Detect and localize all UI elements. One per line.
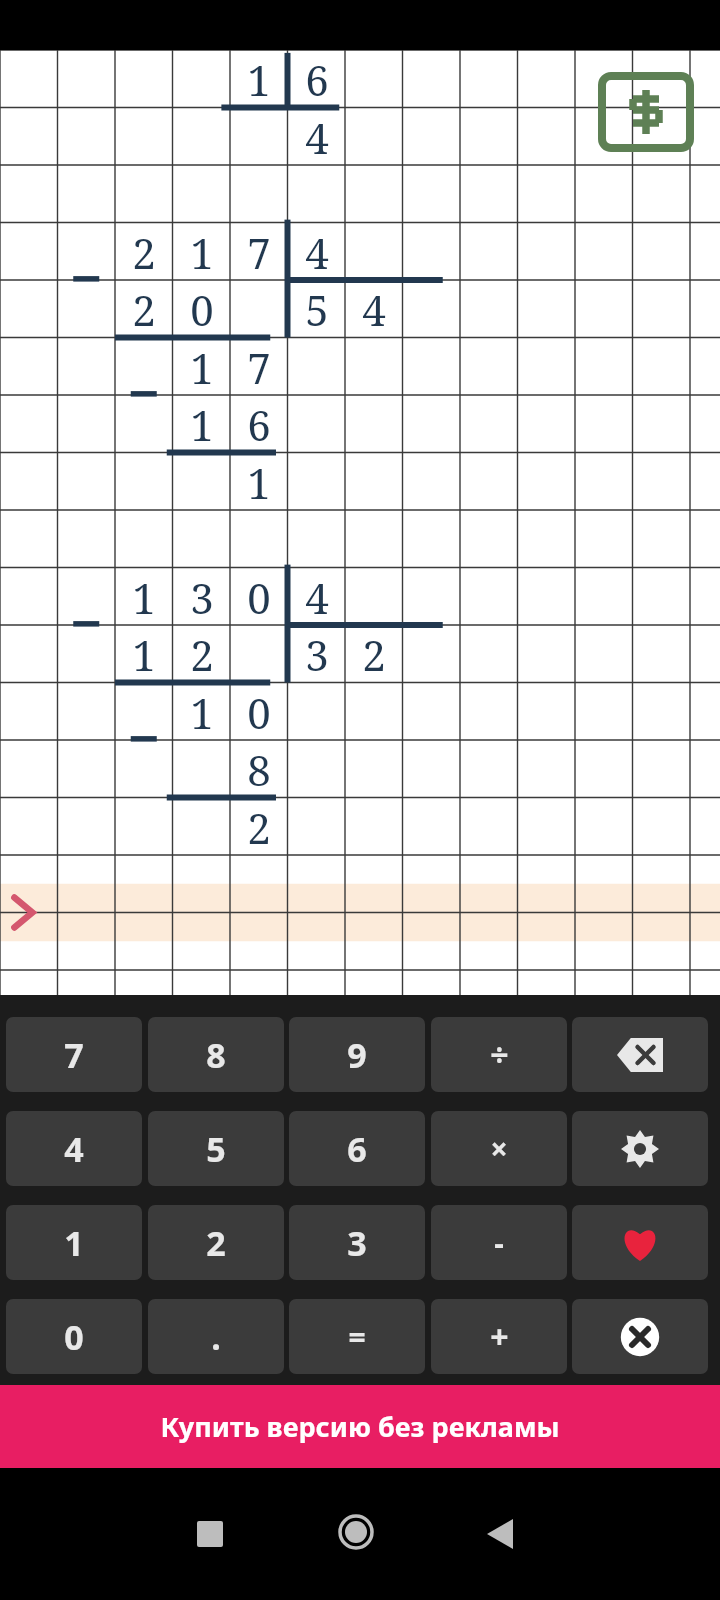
staticText: 4 xyxy=(362,281,386,338)
button[interactable]: Settings xyxy=(572,1111,708,1186)
button[interactable]: 6 xyxy=(289,1111,425,1186)
staticText: 2 xyxy=(247,799,271,856)
staticText: 7 xyxy=(247,224,271,281)
staticText: 1 xyxy=(247,454,271,511)
staticText: 2 xyxy=(362,626,386,683)
staticText: 4 xyxy=(305,109,329,166)
staticText: 0 xyxy=(190,281,214,338)
button[interactable]: Home xyxy=(325,1501,387,1563)
staticText: 0 xyxy=(247,684,271,741)
staticText: 9 xyxy=(347,1032,367,1078)
button[interactable]: 4 xyxy=(6,1111,142,1186)
staticText: 3 xyxy=(305,626,329,683)
staticText: 6 xyxy=(305,51,329,108)
button[interactable]: Back xyxy=(470,1504,530,1564)
staticText: 1 xyxy=(132,626,156,683)
staticText: × xyxy=(490,1128,508,1169)
button[interactable]: Backspace xyxy=(572,1017,708,1092)
staticText: 4 xyxy=(305,224,329,281)
button[interactable]: 9 xyxy=(289,1017,425,1092)
button[interactable]: 8 xyxy=(148,1017,284,1092)
staticText: 2 xyxy=(132,224,156,281)
button[interactable]: 5 xyxy=(148,1111,284,1186)
button[interactable]: = xyxy=(289,1299,425,1374)
staticText: 5 xyxy=(206,1126,226,1172)
button[interactable]: + xyxy=(431,1299,567,1374)
button[interactable]: 2 xyxy=(148,1205,284,1280)
staticText: = xyxy=(348,1316,366,1357)
button[interactable]: × xyxy=(431,1111,567,1186)
button[interactable]: Close xyxy=(572,1299,708,1374)
staticText: ÷ xyxy=(490,1033,509,1077)
staticText: 1 xyxy=(132,569,156,626)
button[interactable]: 3 xyxy=(289,1205,425,1280)
staticText: 6 xyxy=(347,1126,367,1172)
staticText: 8 xyxy=(247,741,271,798)
staticText: 1 xyxy=(190,224,214,281)
staticText: + xyxy=(490,1315,509,1359)
button[interactable]: 0 xyxy=(6,1299,142,1374)
staticText: 6 xyxy=(247,396,271,453)
staticText: 7 xyxy=(64,1032,84,1078)
staticText: 1 xyxy=(190,339,214,396)
button[interactable]: Buy ad-free version xyxy=(598,72,694,152)
staticText: 0 xyxy=(64,1314,84,1360)
button[interactable]: 7 xyxy=(6,1017,142,1092)
staticText: 1 xyxy=(190,396,214,453)
staticText: 2 xyxy=(132,281,156,338)
staticText: 5 xyxy=(305,281,329,338)
staticText: . xyxy=(211,1314,221,1360)
button[interactable]: Favorite xyxy=(572,1205,708,1280)
staticText: 1 xyxy=(64,1220,84,1266)
staticText: 0 xyxy=(247,569,271,626)
staticText: Купить версию без рекламы xyxy=(160,1408,560,1445)
button[interactable]: ÷ xyxy=(431,1017,567,1092)
button[interactable]: - xyxy=(431,1205,567,1280)
staticText: 3 xyxy=(347,1220,367,1266)
staticText: - xyxy=(494,1222,504,1263)
staticText: 4 xyxy=(64,1126,84,1172)
button[interactable]: 1 xyxy=(6,1205,142,1280)
staticText: 8 xyxy=(206,1032,226,1078)
staticText: 3 xyxy=(190,569,214,626)
staticText: 1 xyxy=(190,684,214,741)
button[interactable]: . xyxy=(148,1299,284,1374)
staticText: 2 xyxy=(206,1220,226,1266)
staticText: 4 xyxy=(305,569,329,626)
staticText: 1 xyxy=(247,51,271,108)
button[interactable]: Купить версию без рекламы xyxy=(0,1385,720,1468)
staticText: 2 xyxy=(190,626,214,683)
staticText: 7 xyxy=(247,339,271,396)
button[interactable]: Recent apps xyxy=(180,1504,240,1564)
